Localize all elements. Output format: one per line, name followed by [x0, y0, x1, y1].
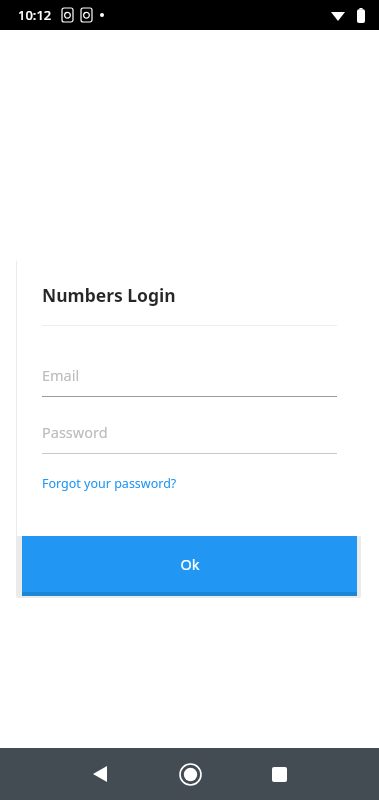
- staticText: Password: [42, 422, 108, 442]
- button[interactable]: Email: [42, 362, 337, 397]
- button[interactable]: Forgot your password?: [42, 472, 177, 495]
- button[interactable]: Recent apps: [257, 752, 301, 796]
- button[interactable]: Home: [168, 752, 212, 796]
- staticText: Numbers Login: [42, 283, 176, 307]
- staticText: Forgot your password?: [42, 475, 177, 492]
- button[interactable]: Back: [78, 752, 122, 796]
- button[interactable]: Password: [42, 419, 337, 454]
- button[interactable]: Ok: [22, 536, 357, 596]
- staticText: Email: [42, 365, 80, 385]
- staticText: 10:12: [18, 6, 52, 24]
- staticText: Ok: [180, 554, 200, 574]
